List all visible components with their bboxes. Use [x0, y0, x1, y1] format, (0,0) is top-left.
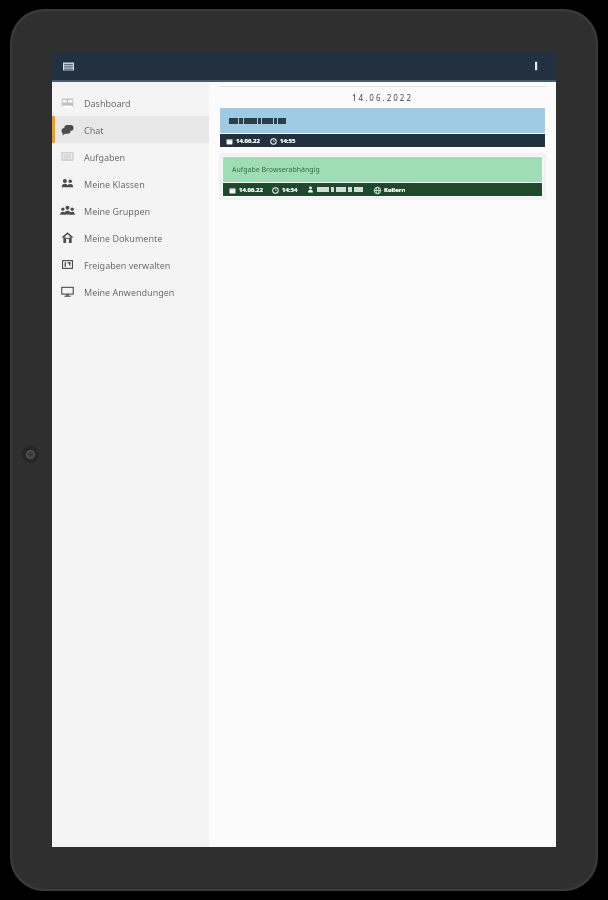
- button[interactable]: Freigaben verwalten: [52, 251, 209, 278]
- staticText: Chat: [84, 124, 104, 136]
- button[interactable]: 14.06.22: [220, 108, 545, 147]
- button[interactable]: Meine Gruppen: [52, 197, 209, 224]
- staticText: Kellern: [384, 186, 406, 194]
- button[interactable]: Aufgabe Browserabhängig: [222, 156, 543, 197]
- staticText: 14.06.22: [239, 186, 263, 194]
- staticText: Dashboard: [84, 97, 131, 109]
- staticText: Meine Dokumente: [84, 232, 163, 244]
- staticText: 14:54: [282, 186, 298, 194]
- staticText: Meine Klassen: [84, 178, 145, 190]
- button[interactable]: Meine Anwendungen: [52, 278, 209, 305]
- button[interactable]: Aufgaben: [52, 143, 209, 170]
- button[interactable]: Menü: [60, 58, 76, 74]
- button[interactable]: Gerätetaste: [22, 446, 39, 463]
- staticText: Meine Anwendungen: [84, 286, 175, 298]
- staticText: Freigaben verwalten: [84, 259, 171, 271]
- staticText: Aufgaben: [84, 151, 126, 163]
- staticText: 14.06.2022: [352, 92, 413, 103]
- staticText: 14.06.22: [236, 137, 260, 145]
- button[interactable]: Dashboard: [52, 89, 209, 116]
- button[interactable]: Meine Klassen: [52, 170, 209, 197]
- button[interactable]: Meine Dokumente: [52, 224, 209, 251]
- staticText: Meine Gruppen: [84, 205, 151, 217]
- button[interactable]: Chat: [52, 116, 209, 143]
- button[interactable]: Weitere Optionen: [528, 58, 544, 74]
- staticText: 14:55: [280, 137, 296, 145]
- staticText: Aufgabe Browserabhängig: [232, 165, 320, 175]
